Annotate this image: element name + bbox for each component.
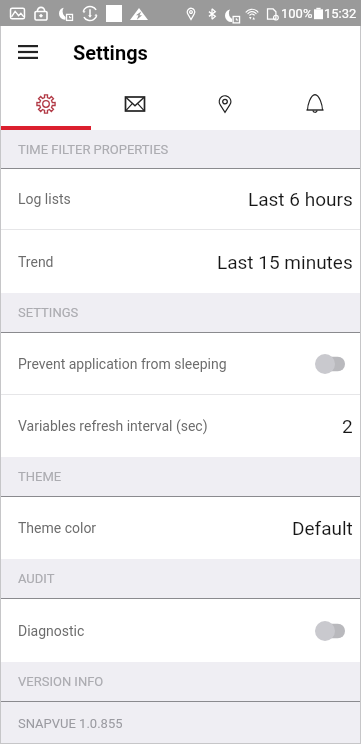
staticText: Settings	[73, 41, 148, 64]
staticText: Theme color	[18, 520, 97, 536]
staticText: SNAPVUE 1.0.855	[18, 716, 123, 731]
staticText: 100%	[281, 6, 313, 21]
button[interactable]: Alerts tab	[270, 82, 360, 126]
button[interactable]: Trend	[1, 230, 360, 293]
staticText: SETTINGS	[18, 305, 79, 320]
staticText: Last 6 hours	[248, 188, 353, 210]
button[interactable]: Theme color	[1, 497, 360, 559]
button[interactable]: Open navigation menu	[6, 30, 49, 73]
staticText: Trend	[18, 254, 54, 270]
button[interactable]: Messages tab	[90, 82, 180, 126]
staticText: Log lists	[18, 191, 71, 207]
staticText: Prevent application from sleeping	[18, 356, 227, 372]
button[interactable]: Locations tab	[180, 82, 270, 126]
button[interactable]: Log lists	[1, 169, 360, 229]
staticText: Diagnostic	[18, 623, 85, 639]
staticText: 15:32	[324, 6, 357, 21]
staticText: 2	[342, 415, 353, 437]
button[interactable]: Variables refresh interval (sec)	[1, 395, 360, 457]
staticText: Last 15 minutes	[217, 251, 353, 273]
button[interactable]: Settings tab	[1, 82, 90, 126]
staticText: VERSION INFO	[18, 674, 104, 689]
staticText: Default	[292, 517, 353, 539]
staticText: AUDIT	[18, 571, 55, 586]
staticText: Variables refresh interval (sec)	[18, 418, 208, 434]
button[interactable]: Diagnostic	[1, 599, 360, 662]
staticText: THEME	[18, 469, 62, 484]
button[interactable]: Prevent application from sleeping	[1, 333, 360, 394]
staticText: TIME FILTER PROPERTIES	[18, 142, 169, 157]
